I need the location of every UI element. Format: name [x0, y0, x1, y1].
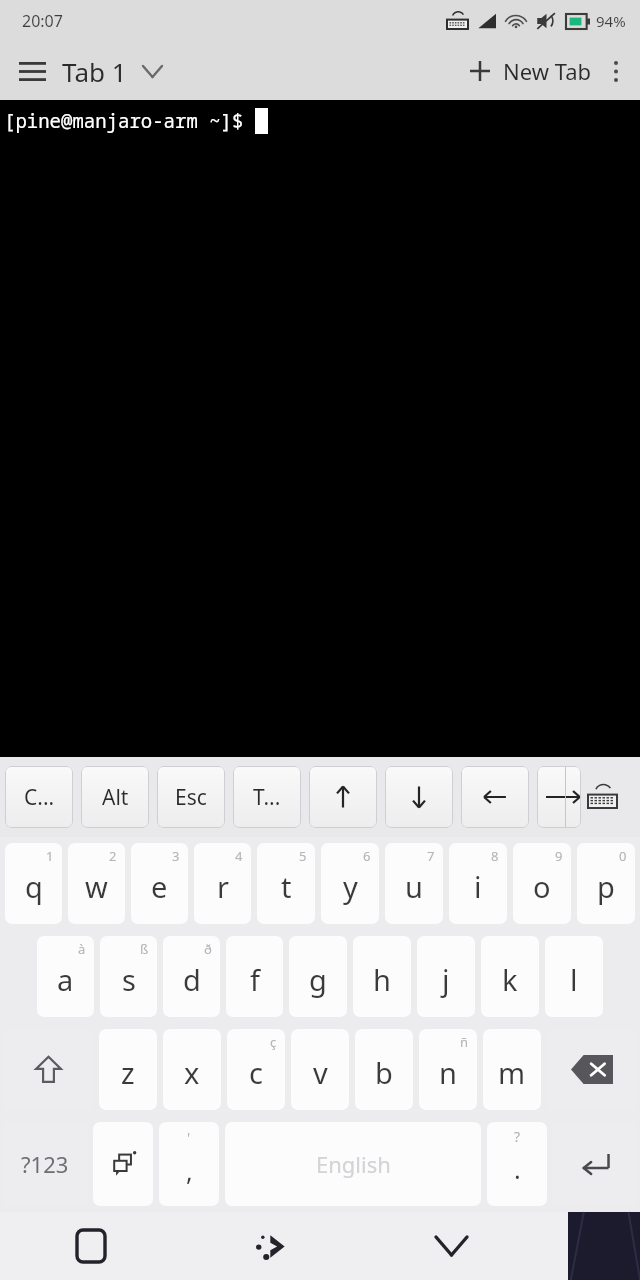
button[interactable]: f — [226, 936, 283, 1017]
staticText: Tab 1 — [62, 54, 127, 89]
button[interactable]: j — [417, 936, 475, 1017]
button[interactable]: 1 — [5, 843, 62, 924]
button[interactable]: More options — [594, 49, 638, 93]
staticText: 0 — [619, 847, 627, 865]
button[interactable]: 3 — [131, 843, 188, 924]
staticText: b — [375, 1053, 393, 1092]
staticText: v — [313, 1053, 328, 1092]
staticText: e — [151, 867, 168, 906]
button[interactable]: ñ — [419, 1029, 477, 1110]
staticText: 5 — [299, 847, 307, 865]
button[interactable]: Up — [309, 766, 377, 828]
button[interactable]: Alt — [81, 766, 149, 828]
button[interactable]: Esc — [157, 766, 225, 828]
button[interactable]: English — [225, 1122, 481, 1206]
staticText: i — [474, 867, 482, 906]
staticText: z — [121, 1053, 135, 1092]
staticText: j — [442, 960, 450, 999]
staticText: p — [597, 867, 615, 906]
staticText: . — [514, 1152, 521, 1186]
button[interactable]: Backspace — [547, 1029, 637, 1110]
button[interactable]: 6 — [321, 843, 379, 924]
staticText: 20:07 — [22, 10, 63, 32]
staticText: 3 — [172, 847, 180, 865]
staticText: n — [439, 1053, 457, 1092]
staticText: o — [533, 867, 551, 906]
button[interactable]: Enter — [553, 1122, 637, 1206]
staticText: 1 — [46, 847, 54, 865]
staticText: 9 — [555, 847, 563, 865]
staticText: t — [281, 867, 292, 906]
staticText: ?123 — [21, 1149, 69, 1179]
button[interactable]: Tab 1 — [62, 54, 162, 89]
button[interactable]: Switch language — [93, 1122, 153, 1206]
button[interactable]: ' — [159, 1122, 219, 1206]
button[interactable]: 4 — [194, 843, 251, 924]
staticText: ' — [187, 1128, 191, 1147]
staticText: 4 — [235, 847, 243, 865]
button[interactable]: Home — [181, 1212, 361, 1280]
staticText: , — [186, 1154, 193, 1188]
button[interactable]: à — [37, 936, 94, 1017]
staticText: 94% — [596, 11, 626, 31]
staticText: q — [25, 867, 43, 906]
staticText: 8 — [491, 847, 499, 865]
staticText: g — [309, 960, 327, 999]
button[interactable]: m — [483, 1029, 541, 1110]
button[interactable]: 8 — [449, 843, 507, 924]
staticText: ð — [204, 940, 212, 958]
staticText: Esc — [175, 783, 207, 812]
staticText: ñ — [460, 1033, 469, 1051]
button[interactable]: Recent app preview — [568, 1212, 640, 1280]
button[interactable]: b — [355, 1029, 413, 1110]
staticText: à — [78, 940, 86, 958]
staticText: T... — [253, 783, 281, 812]
button[interactable]: New Tab — [470, 56, 592, 86]
button[interactable]: 7 — [385, 843, 443, 924]
staticText: c — [249, 1053, 263, 1092]
button[interactable]: z — [99, 1029, 157, 1110]
button[interactable]: Back — [361, 1212, 541, 1280]
staticText: 2 — [109, 847, 117, 865]
button[interactable]: ß — [100, 936, 157, 1017]
button[interactable]: Shift — [3, 1029, 93, 1110]
button[interactable]: Recents — [0, 1212, 181, 1280]
staticText: d — [183, 960, 201, 999]
staticText: y — [343, 867, 358, 906]
button[interactable]: g — [289, 936, 347, 1017]
button[interactable]: x — [163, 1029, 221, 1110]
button[interactable]: C... — [5, 766, 73, 828]
button[interactable]: Left — [461, 766, 529, 828]
button[interactable]: h — [353, 936, 411, 1017]
staticText: ? — [514, 1127, 521, 1146]
button[interactable]: ð — [163, 936, 220, 1017]
staticText: ß — [140, 940, 149, 958]
button[interactable]: l — [545, 936, 603, 1017]
button[interactable]: 2 — [68, 843, 125, 924]
staticText: w — [85, 867, 108, 906]
button[interactable]: 0 — [577, 843, 635, 924]
staticText: C... — [24, 783, 55, 812]
button[interactable]: Right — [537, 766, 581, 828]
staticText: New Tab — [503, 56, 592, 86]
staticText: u — [405, 867, 423, 906]
staticText: k — [502, 960, 518, 999]
staticText: English — [316, 1149, 391, 1179]
button[interactable]: Menu — [8, 47, 56, 95]
button[interactable]: 5 — [257, 843, 315, 924]
staticText: a — [57, 960, 74, 999]
button[interactable]: Down — [385, 766, 453, 828]
staticText: [pine@manjaro-arm ~]$ — [4, 108, 255, 134]
button[interactable]: ?123 — [3, 1122, 87, 1206]
button[interactable]: T... — [233, 766, 301, 828]
button[interactable]: ç — [227, 1029, 285, 1110]
button[interactable]: ? — [487, 1122, 547, 1206]
staticText: 6 — [363, 847, 371, 865]
button[interactable]: v — [291, 1029, 349, 1110]
button[interactable]: Show keyboard — [566, 766, 638, 828]
staticText: x — [184, 1053, 200, 1092]
button[interactable]: 9 — [513, 843, 571, 924]
staticText: f — [250, 960, 260, 999]
button[interactable]: k — [481, 936, 539, 1017]
staticText: 7 — [427, 847, 435, 865]
